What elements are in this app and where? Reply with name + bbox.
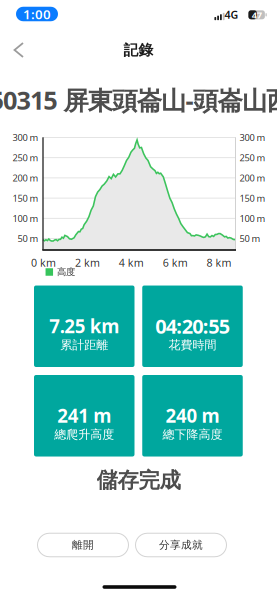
- staticText: 分享成就: [159, 538, 203, 551]
- staticText: 100 m: [12, 212, 38, 224]
- staticText: 50 m: [17, 232, 38, 245]
- staticText: 150 m: [12, 192, 38, 204]
- staticText: 300 m: [12, 131, 38, 144]
- staticText: 100 m: [239, 212, 265, 224]
- staticText: 儲存完成: [96, 467, 180, 493]
- staticText: 累計距離: [60, 338, 108, 352]
- staticText: 300 m: [239, 131, 265, 144]
- staticText: 240 m: [165, 403, 219, 428]
- staticText: 47: [252, 9, 262, 21]
- staticText: 6 km: [163, 255, 188, 270]
- staticText: 總下降高度: [162, 427, 222, 442]
- button[interactable]: 1:00: [16, 7, 58, 21]
- staticText: 花費時間: [168, 338, 216, 352]
- staticText: 4 km: [119, 255, 144, 270]
- staticText: 0 km: [31, 255, 56, 270]
- staticText: 2 km: [75, 255, 100, 270]
- staticText: 記錄: [123, 41, 153, 59]
- staticText: 4G: [224, 7, 238, 22]
- staticText: 04:20:55: [155, 313, 230, 339]
- staticText: 高度: [57, 266, 75, 278]
- staticText: 200 m: [12, 172, 38, 184]
- button[interactable]: 分享成就: [135, 533, 226, 557]
- staticText: 8 km: [207, 255, 232, 270]
- staticText: 總爬升高度: [54, 427, 114, 442]
- staticText: 200 m: [239, 172, 265, 184]
- staticText: 20250315 屏東頭崙山-頭崙山西峰: [0, 83, 277, 117]
- staticText: 7.25 km: [49, 314, 119, 338]
- staticText: 50 m: [239, 232, 260, 245]
- staticText: 250 m: [239, 151, 265, 164]
- staticText: 1:00: [23, 5, 51, 23]
- button[interactable]: [5, 35, 35, 65]
- staticText: 241 m: [57, 403, 111, 428]
- staticText: 150 m: [239, 192, 265, 204]
- staticText: 250 m: [12, 151, 38, 164]
- staticText: 離開: [72, 538, 94, 551]
- button[interactable]: 離開: [37, 533, 128, 557]
